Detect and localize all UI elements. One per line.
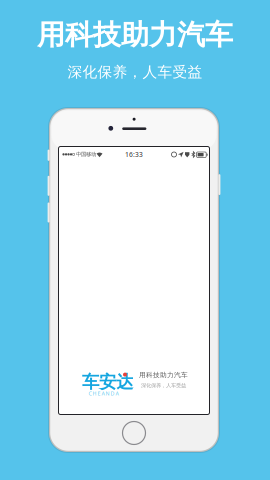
staticText: 用科技助力汽车 <box>37 18 233 52</box>
staticText: 中国移动 <box>76 151 96 158</box>
staticText: 16:33 <box>125 150 143 159</box>
staticText: C H E A N D A <box>88 390 118 397</box>
staticText: 车安达 <box>82 371 133 393</box>
staticText: 用科技助力汽车 <box>139 371 188 379</box>
staticText: 深化保养，人车受益 <box>67 63 202 81</box>
staticText: 深化保养，人车受益 <box>141 382 186 389</box>
